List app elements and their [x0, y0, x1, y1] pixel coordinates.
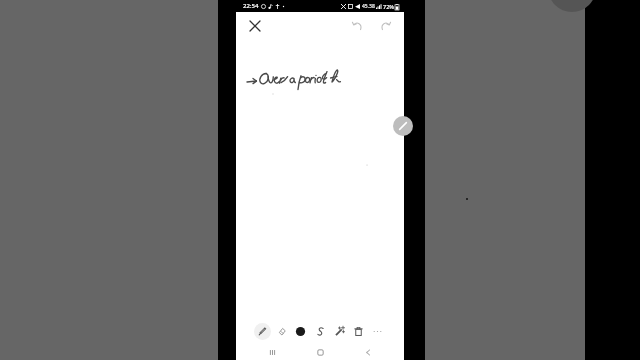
button[interactable]: Pen settings handle — [393, 116, 413, 136]
staticText: 45.38 — [362, 3, 375, 10]
button[interactable]: Eraser — [273, 323, 290, 340]
staticText: 72% — [383, 3, 394, 10]
button[interactable]: Lasso select — [312, 323, 329, 340]
button[interactable]: More options — [369, 323, 386, 340]
button[interactable]: Undo — [346, 15, 368, 37]
button[interactable]: Pen — [254, 323, 271, 340]
button[interactable]: Color black — [292, 323, 309, 340]
staticText: 22:54 — [243, 2, 259, 10]
button[interactable]: Back — [356, 344, 380, 360]
button[interactable]: Redo — [374, 15, 396, 37]
button[interactable]: Recent apps — [260, 344, 284, 360]
button[interactable]: Magic wand — [331, 323, 348, 340]
button[interactable]: Delete — [350, 323, 367, 340]
button[interactable]: Home — [308, 344, 332, 360]
button[interactable]: Close — [244, 15, 266, 37]
